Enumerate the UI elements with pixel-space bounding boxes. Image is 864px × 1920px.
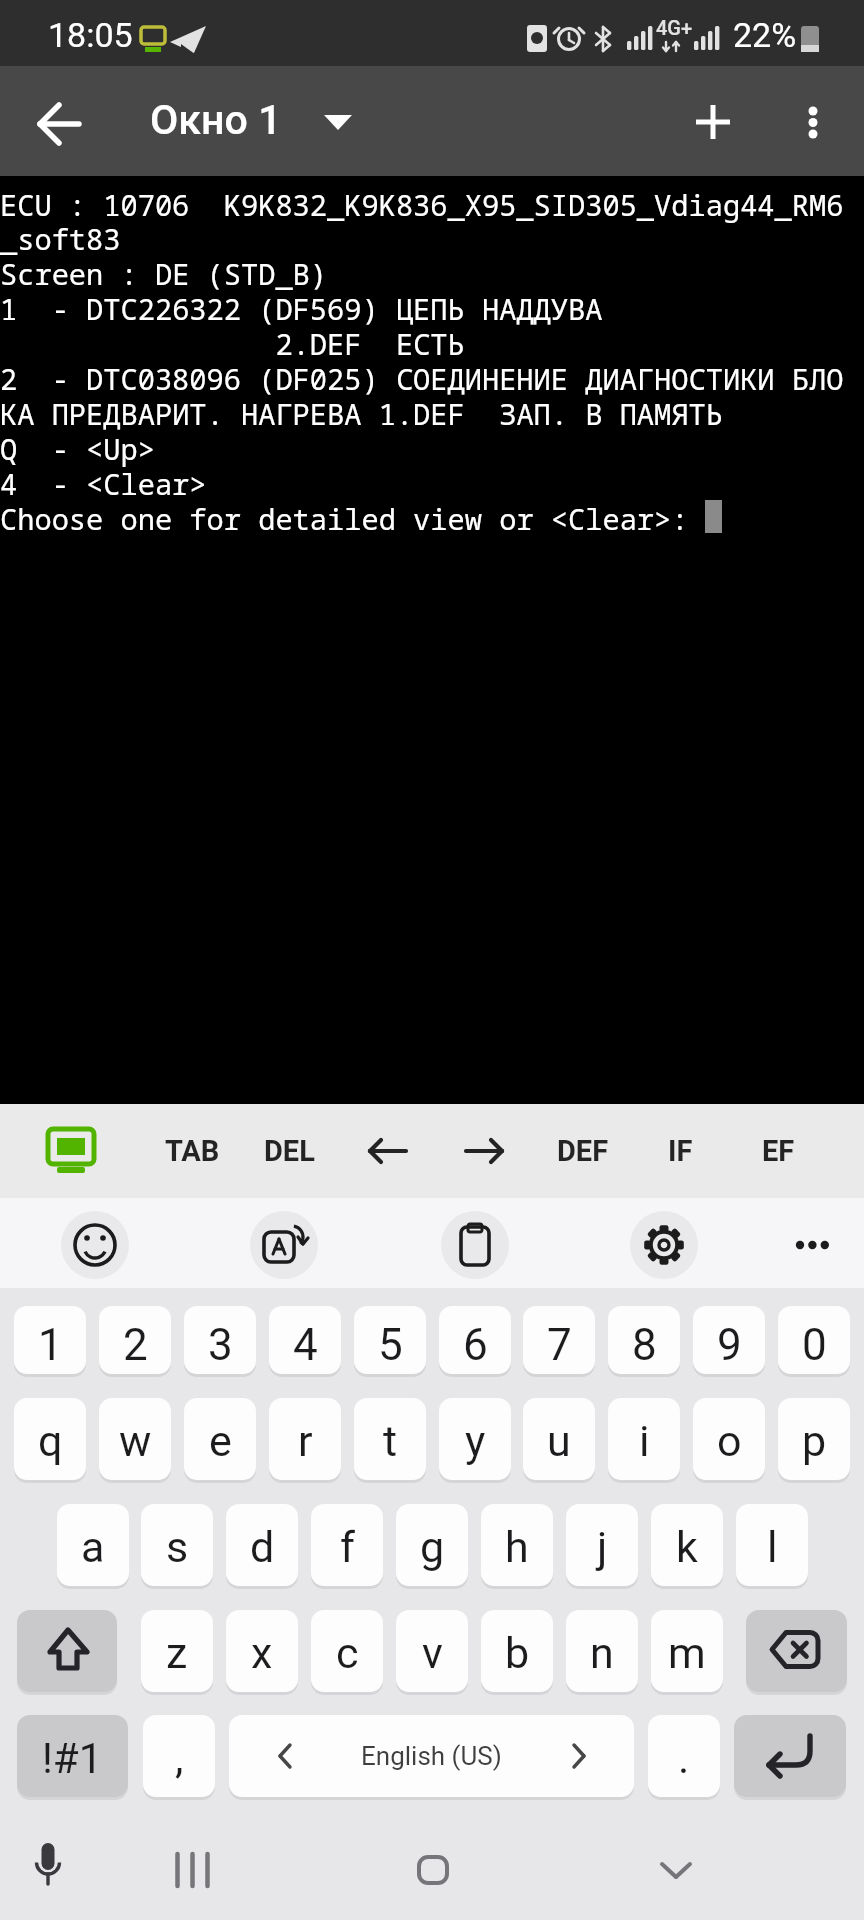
button[interactable] <box>646 1836 706 1896</box>
button[interactable] <box>34 1110 108 1192</box>
button[interactable]: n <box>566 1610 638 1692</box>
button[interactable] <box>403 1836 463 1896</box>
button[interactable]: 3 <box>184 1306 256 1374</box>
button[interactable]: d <box>226 1504 298 1586</box>
button[interactable]: v <box>396 1610 468 1692</box>
staticText: l <box>767 1522 778 1572</box>
button[interactable] <box>439 1110 529 1192</box>
staticText: u <box>547 1416 571 1466</box>
staticText: d <box>250 1522 275 1572</box>
button[interactable]: 4 <box>269 1306 341 1374</box>
staticText: h <box>505 1522 529 1572</box>
staticText: 0 <box>802 1319 827 1371</box>
staticText: . <box>678 1733 690 1783</box>
staticText: 4G+ <box>656 16 693 39</box>
button[interactable]: m <box>651 1610 723 1692</box>
staticText: 1 <box>38 1319 63 1371</box>
button[interactable] <box>776 1211 844 1279</box>
button[interactable]: k <box>651 1504 723 1586</box>
staticText: m <box>668 1628 706 1678</box>
button[interactable] <box>734 1715 846 1797</box>
button[interactable]: 1 <box>14 1306 86 1374</box>
staticText: Окно 1 <box>150 96 282 144</box>
button[interactable]: DEF <box>538 1110 628 1192</box>
button[interactable]: TAB <box>147 1110 237 1192</box>
button[interactable]: y <box>439 1398 511 1480</box>
button[interactable]: x <box>226 1610 298 1692</box>
staticText: k <box>676 1522 698 1572</box>
staticText: !#1 <box>42 1734 103 1783</box>
staticText: TAB <box>165 1134 220 1168</box>
button[interactable]: . <box>648 1715 720 1797</box>
staticText: q <box>38 1416 63 1466</box>
staticText: g <box>420 1522 445 1572</box>
staticText: o <box>717 1416 742 1466</box>
staticText: 4 <box>293 1319 318 1371</box>
staticText: w <box>119 1416 152 1466</box>
button[interactable] <box>746 1610 847 1692</box>
staticText: English (US) <box>361 1741 502 1771</box>
button[interactable] <box>20 86 96 162</box>
staticText: y <box>465 1416 486 1466</box>
button[interactable]: 5 <box>354 1306 426 1374</box>
staticText: ECU : 10706 K9K832_K9K836_X95_SID305_Vdi… <box>0 185 844 539</box>
button[interactable]: 9 <box>693 1306 765 1374</box>
button[interactable] <box>630 1211 698 1279</box>
button[interactable]: p <box>778 1398 850 1480</box>
staticText: i <box>639 1416 650 1466</box>
button[interactable] <box>780 86 848 158</box>
button[interactable]: 8 <box>608 1306 680 1374</box>
button[interactable]: EF <box>733 1110 823 1192</box>
staticText: r <box>298 1416 313 1466</box>
button[interactable]: e <box>184 1398 256 1480</box>
button[interactable]: !#1 <box>17 1715 128 1797</box>
button[interactable]: s <box>141 1504 213 1586</box>
button[interactable]: r <box>269 1398 341 1480</box>
staticText: c <box>336 1628 359 1678</box>
button[interactable]: , <box>143 1715 215 1797</box>
staticText: DEF <box>557 1134 609 1168</box>
staticText: s <box>166 1522 189 1572</box>
button[interactable]: f <box>311 1504 383 1586</box>
button[interactable] <box>343 1110 433 1192</box>
button[interactable]: i <box>608 1398 680 1480</box>
button[interactable]: j <box>566 1504 638 1586</box>
button[interactable]: l <box>736 1504 808 1586</box>
button[interactable] <box>61 1211 129 1279</box>
button[interactable]: u <box>523 1398 595 1480</box>
button[interactable]: IF <box>635 1110 725 1192</box>
staticText: 2 <box>123 1319 148 1371</box>
button[interactable] <box>300 96 370 152</box>
button[interactable]: DEL <box>244 1110 334 1192</box>
staticText: 9 <box>717 1319 742 1371</box>
button[interactable]: q <box>14 1398 86 1480</box>
button[interactable] <box>162 1836 222 1896</box>
button[interactable]: 0 <box>778 1306 850 1374</box>
button[interactable]: b <box>481 1610 553 1692</box>
button[interactable]: w <box>99 1398 171 1480</box>
button[interactable]: t <box>354 1398 426 1480</box>
button[interactable]: h <box>481 1504 553 1586</box>
button[interactable] <box>20 1836 80 1896</box>
button[interactable]: 2 <box>99 1306 171 1374</box>
button[interactable]: c <box>311 1610 383 1692</box>
button[interactable] <box>17 1610 117 1692</box>
button[interactable]: o <box>693 1398 765 1480</box>
button[interactable] <box>678 86 750 158</box>
button[interactable] <box>250 1211 318 1279</box>
staticText: b <box>505 1628 530 1678</box>
button[interactable]: g <box>396 1504 468 1586</box>
staticText: p <box>802 1416 827 1466</box>
staticText: v <box>422 1628 443 1678</box>
staticText: e <box>209 1416 232 1466</box>
staticText: DEL <box>264 1134 315 1168</box>
button[interactable]: English (US) <box>229 1715 634 1797</box>
button[interactable]: a <box>57 1504 129 1586</box>
button[interactable] <box>441 1211 509 1279</box>
staticText: 22% <box>733 15 797 55</box>
staticText: j <box>597 1522 608 1572</box>
button[interactable]: z <box>141 1610 213 1692</box>
button[interactable]: 6 <box>439 1306 511 1374</box>
staticText: EF <box>762 1134 795 1168</box>
button[interactable]: 7 <box>523 1306 595 1374</box>
